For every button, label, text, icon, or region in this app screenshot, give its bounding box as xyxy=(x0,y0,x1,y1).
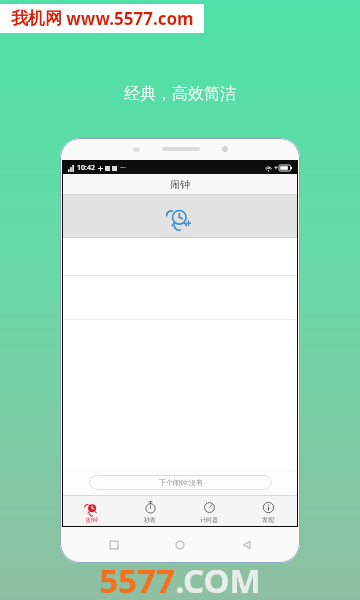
button[interactable]: 闹钟 xyxy=(63,496,121,526)
staticText: 计时器 xyxy=(200,516,218,524)
staticText: 发现 xyxy=(262,516,274,524)
button[interactable]: Add alarm xyxy=(163,199,197,233)
button[interactable]: Back xyxy=(234,532,260,558)
staticText: www.5577.com xyxy=(66,7,194,30)
button[interactable]: 发现 xyxy=(238,496,297,526)
button[interactable]: Recents xyxy=(101,532,127,558)
staticText: 闹钟 xyxy=(86,516,98,524)
button[interactable]: 秒表 xyxy=(121,496,179,526)
button[interactable]: 下个闹钟:没有 xyxy=(89,475,272,490)
staticText: 经典，高效简洁 xyxy=(124,84,236,104)
staticText: .COM xyxy=(175,558,261,600)
staticText: + xyxy=(274,164,278,172)
staticText: 秒表 xyxy=(144,516,156,524)
staticText: ··· xyxy=(120,163,126,173)
staticText: 5577 xyxy=(99,558,175,600)
staticText: 10:42 xyxy=(77,163,95,173)
button[interactable]: Home xyxy=(167,532,193,558)
staticText: 下个闹钟:没有 xyxy=(159,478,203,488)
staticText: 我机网 xyxy=(11,8,62,29)
button[interactable]: 计时器 xyxy=(179,496,238,526)
staticText: 闹钟 xyxy=(170,178,190,191)
